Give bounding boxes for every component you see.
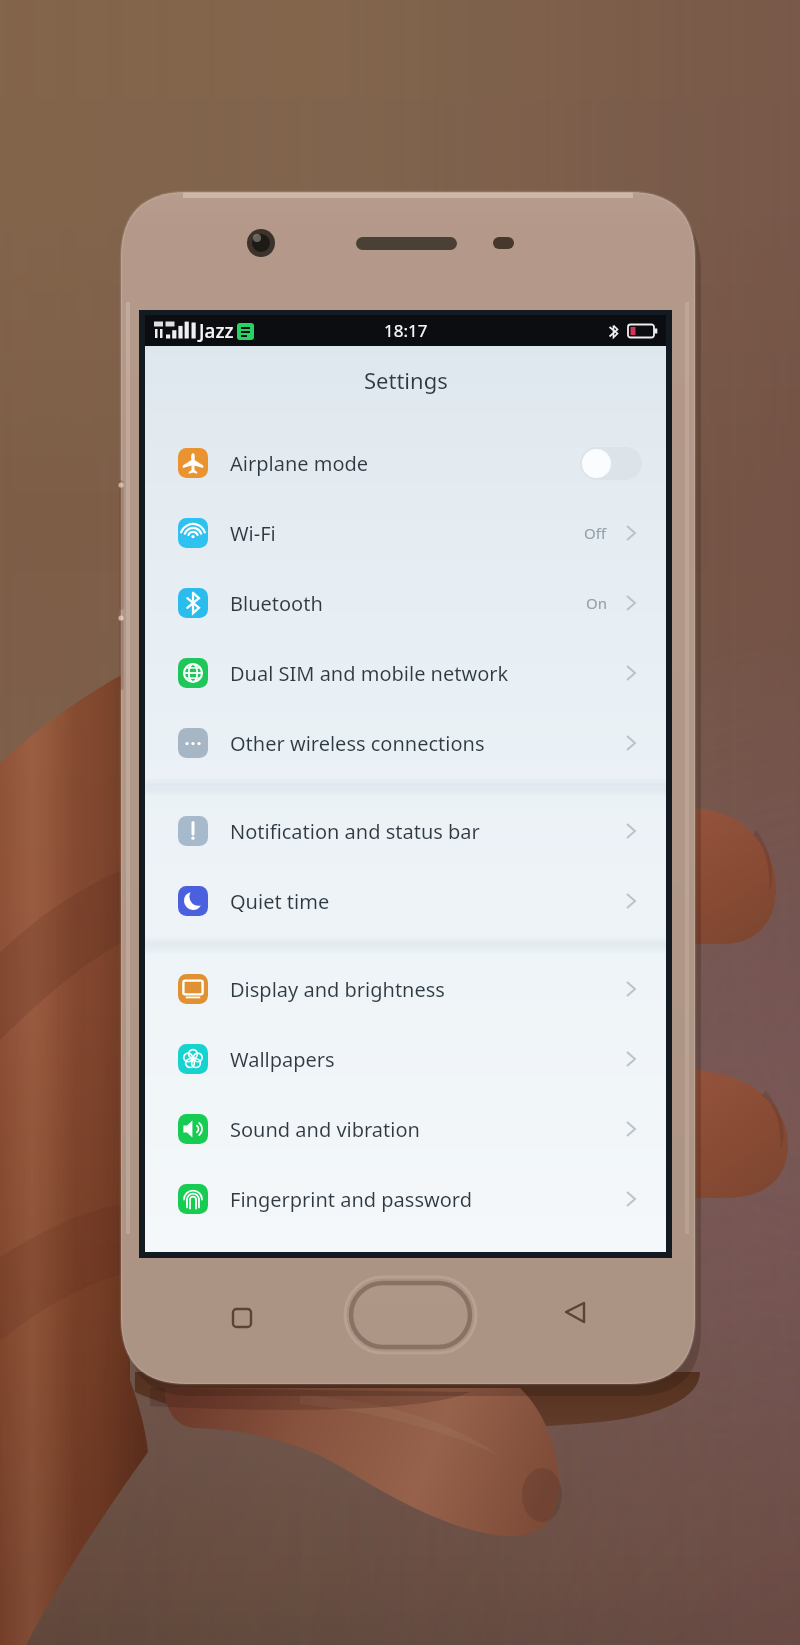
button[interactable]: Fingerprint and password (145, 1164, 666, 1234)
button[interactable]: Notification and status bar (145, 796, 666, 866)
button[interactable]: Display and brightness (145, 954, 666, 1024)
staticText: Wallpapers (230, 1046, 335, 1073)
staticText: Jazz (199, 318, 234, 344)
button[interactable]: Quiet time (145, 866, 666, 936)
staticText: Fingerprint and password (230, 1186, 472, 1213)
button[interactable]: Airplane mode (145, 428, 666, 498)
button[interactable]: Wi-Fi (145, 498, 666, 568)
button[interactable]: Wallpapers (145, 1024, 666, 1094)
staticText: 18:17 (384, 319, 428, 342)
staticText: Settings (364, 365, 448, 395)
button[interactable]: Sound and vibration (145, 1094, 666, 1164)
staticText: Sound and vibration (230, 1116, 420, 1143)
staticText: Off (584, 523, 607, 543)
button[interactable]: Bluetooth (145, 568, 666, 638)
staticText: Quiet time (230, 888, 330, 915)
staticText: Other wireless connections (230, 730, 485, 757)
staticText: On (586, 593, 607, 613)
button[interactable]: Dual SIM and mobile network (145, 638, 666, 708)
staticText: Wi-Fi (230, 520, 276, 547)
button[interactable]: Recent apps (218, 1294, 266, 1342)
staticText: Bluetooth (230, 590, 323, 617)
staticText: Display and brightness (230, 976, 445, 1003)
staticText: Notification and status bar (230, 818, 480, 845)
staticText: Dual SIM and mobile network (230, 660, 509, 687)
button[interactable]: Home (351, 1283, 470, 1347)
button[interactable]: Back (551, 1294, 599, 1342)
staticText: Airplane mode (230, 450, 369, 477)
button[interactable]: Other wireless connections (145, 708, 666, 778)
